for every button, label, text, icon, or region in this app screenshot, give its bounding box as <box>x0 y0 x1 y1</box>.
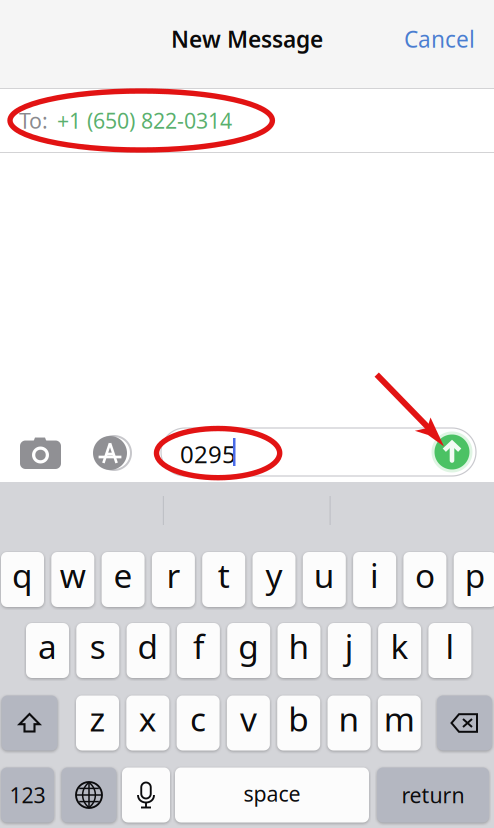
button[interactable]: o <box>403 552 446 607</box>
button[interactable]: e <box>102 552 145 607</box>
button[interactable]: c <box>177 695 220 750</box>
staticText: g <box>238 624 259 668</box>
button[interactable]: f <box>177 623 220 678</box>
staticText: x <box>139 696 157 741</box>
staticText: To: <box>19 106 48 135</box>
button[interactable]: s <box>76 623 119 678</box>
staticText: u <box>314 553 335 597</box>
button[interactable]: v <box>227 695 270 750</box>
button[interactable]: b <box>277 695 320 750</box>
button[interactable]: m <box>378 695 421 750</box>
staticText: w <box>60 553 86 597</box>
staticText: c <box>190 696 206 741</box>
staticText: y <box>265 553 282 597</box>
staticText: b <box>288 696 309 741</box>
button[interactable]: return <box>377 767 489 822</box>
button[interactable]: Next keyboard <box>61 767 116 822</box>
staticText: d <box>138 624 159 668</box>
button[interactable]: Shift <box>1 695 57 750</box>
staticText: a <box>38 624 57 668</box>
button[interactable]: Cancel <box>404 14 494 64</box>
staticText: j <box>345 624 354 668</box>
staticText: k <box>391 624 409 668</box>
staticText: m <box>384 696 415 741</box>
button[interactable]: y <box>252 552 295 607</box>
button[interactable]: w <box>51 552 94 607</box>
button[interactable]: Take photo <box>20 437 61 469</box>
staticText: New Message <box>171 24 323 54</box>
staticText: h <box>288 624 309 668</box>
button[interactable]: t <box>202 552 245 607</box>
staticText: f <box>193 624 204 668</box>
staticText: 123 <box>9 781 45 809</box>
staticText: +1 (650) 822-0314 <box>57 106 232 135</box>
staticText: s <box>90 624 106 668</box>
staticText: i <box>370 553 379 597</box>
button[interactable]: r <box>152 552 195 607</box>
button[interactable]: l <box>428 623 471 678</box>
staticText: v <box>240 696 257 741</box>
staticText: q <box>12 553 33 597</box>
staticText: 0295 <box>180 438 236 470</box>
button[interactable]: 123 <box>1 767 54 822</box>
button[interactable]: n <box>327 695 370 750</box>
button[interactable]: z <box>76 695 119 750</box>
button[interactable]: j <box>328 623 371 678</box>
staticText: r <box>166 553 180 597</box>
button[interactable]: k <box>378 623 421 678</box>
staticText: p <box>465 553 486 597</box>
staticText: t <box>218 553 230 597</box>
staticText: z <box>89 696 105 741</box>
staticText: o <box>415 553 435 597</box>
button[interactable]: Send <box>430 430 474 474</box>
staticText: n <box>338 696 359 741</box>
button[interactable]: Dictate <box>122 767 170 822</box>
staticText: l <box>445 624 454 668</box>
staticText: Cancel <box>404 24 475 54</box>
button[interactable]: q <box>1 552 44 607</box>
button[interactable]: d <box>127 623 170 678</box>
button[interactable]: Delete <box>437 695 492 750</box>
button[interactable]: i <box>353 552 396 607</box>
button[interactable]: p <box>454 552 494 607</box>
button[interactable]: u <box>303 552 346 607</box>
staticText: e <box>114 553 133 597</box>
button[interactable]: h <box>277 623 320 678</box>
button[interactable]: g <box>227 623 270 678</box>
staticText: space <box>243 779 300 808</box>
button[interactable]: a <box>26 623 69 678</box>
button[interactable]: space <box>175 767 369 822</box>
button[interactable]: Apps <box>90 436 130 470</box>
staticText: return <box>401 781 464 809</box>
button[interactable]: x <box>126 695 169 750</box>
